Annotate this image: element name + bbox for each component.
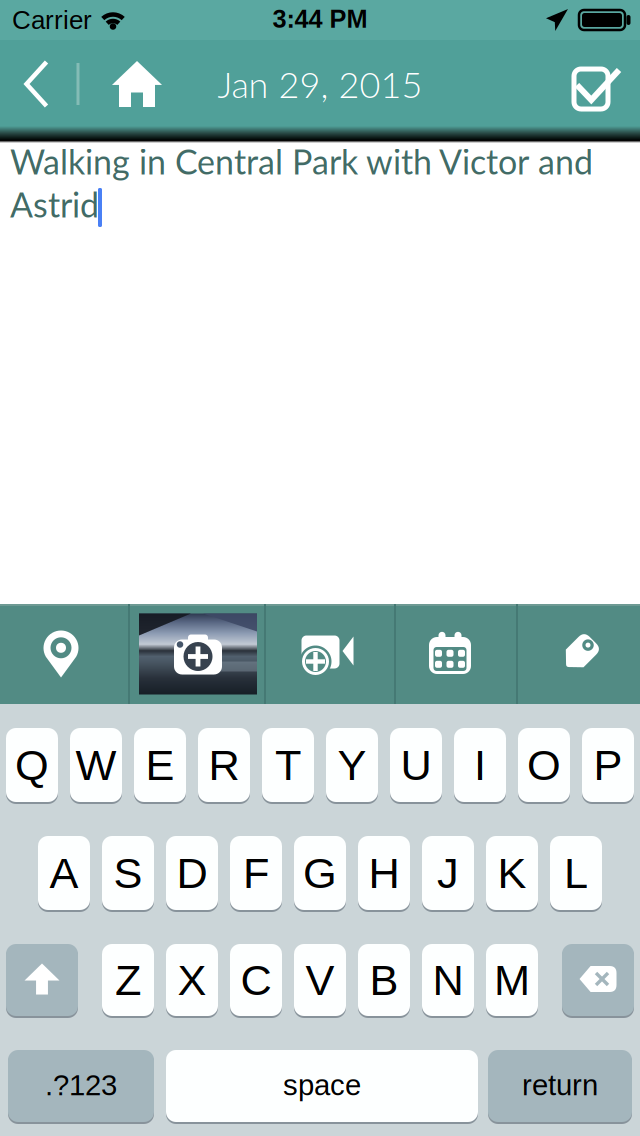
button[interactable]: Back <box>12 40 62 128</box>
staticText: W <box>75 741 116 789</box>
button[interactable]: W <box>70 727 122 803</box>
staticText: G <box>303 849 337 897</box>
button[interactable]: M <box>486 943 538 1017</box>
staticText: .?123 <box>45 1069 117 1101</box>
button[interactable]: Shift <box>6 943 78 1017</box>
staticText: V <box>305 956 334 1004</box>
button[interactable]: U <box>390 727 442 803</box>
staticText: E <box>145 741 174 789</box>
staticText: Y <box>337 741 366 789</box>
button[interactable]: X <box>166 943 218 1017</box>
button[interactable]: Return <box>488 1049 632 1123</box>
staticText: Z <box>115 956 141 1004</box>
button[interactable]: Delete <box>562 943 634 1017</box>
button[interactable]: V <box>294 943 346 1017</box>
button[interactable]: Change date <box>389 604 511 704</box>
staticText: I <box>474 741 486 789</box>
staticText: U <box>400 741 431 789</box>
staticText: R <box>208 741 239 789</box>
staticText: H <box>368 849 399 897</box>
button[interactable]: D <box>166 835 218 911</box>
staticText: Q <box>15 741 49 789</box>
staticText: Carrier <box>12 5 92 34</box>
button[interactable]: Add tag <box>518 604 640 704</box>
button[interactable]: Done <box>570 60 616 110</box>
button[interactable]: Numbers <box>8 1049 154 1123</box>
staticText: D <box>176 849 207 897</box>
button[interactable]: Y <box>326 727 378 803</box>
button[interactable]: Add location <box>0 604 125 704</box>
staticText: A <box>49 849 78 897</box>
staticText: B <box>369 956 398 1004</box>
button[interactable]: Add photo <box>130 604 266 704</box>
button[interactable]: C <box>230 943 282 1017</box>
staticText: L <box>564 849 588 897</box>
button[interactable]: K <box>486 835 538 911</box>
staticText: space <box>283 1069 361 1101</box>
staticText: N <box>432 956 463 1004</box>
button[interactable]: R <box>198 727 250 803</box>
button[interactable]: H <box>358 835 410 911</box>
button[interactable]: I <box>454 727 506 803</box>
staticText: 3:44 PM <box>272 5 367 33</box>
button[interactable]: A <box>38 835 90 911</box>
button[interactable]: S <box>102 835 154 911</box>
button[interactable]: O <box>518 727 570 803</box>
button[interactable]: Space <box>166 1049 478 1123</box>
button[interactable]: Add video <box>262 605 392 705</box>
button[interactable]: Home <box>106 40 168 128</box>
staticText: T <box>275 741 301 789</box>
button[interactable]: B <box>358 943 410 1017</box>
staticText: Walking in Central Park with Victor and <box>10 141 593 182</box>
staticText: C <box>240 956 271 1004</box>
staticText: Jan 29, 2015 <box>217 62 422 106</box>
button[interactable]: E <box>134 727 186 803</box>
button[interactable]: T <box>262 727 314 803</box>
staticText: J <box>437 849 459 897</box>
staticText: S <box>113 849 142 897</box>
button[interactable]: L <box>550 835 602 911</box>
staticText: Astrid <box>10 184 99 225</box>
button[interactable]: Q <box>6 727 58 803</box>
button[interactable]: J <box>422 835 474 911</box>
button[interactable]: P <box>582 727 634 803</box>
staticText: return <box>522 1069 598 1101</box>
button[interactable]: F <box>230 835 282 911</box>
button[interactable]: G <box>294 835 346 911</box>
staticText: M <box>494 956 530 1004</box>
staticText: F <box>243 849 269 897</box>
button[interactable]: N <box>422 943 474 1017</box>
staticText: P <box>593 741 622 789</box>
staticText: X <box>177 956 206 1004</box>
staticText: K <box>497 849 526 897</box>
button[interactable]: Z <box>102 943 154 1017</box>
staticText: O <box>527 741 561 789</box>
